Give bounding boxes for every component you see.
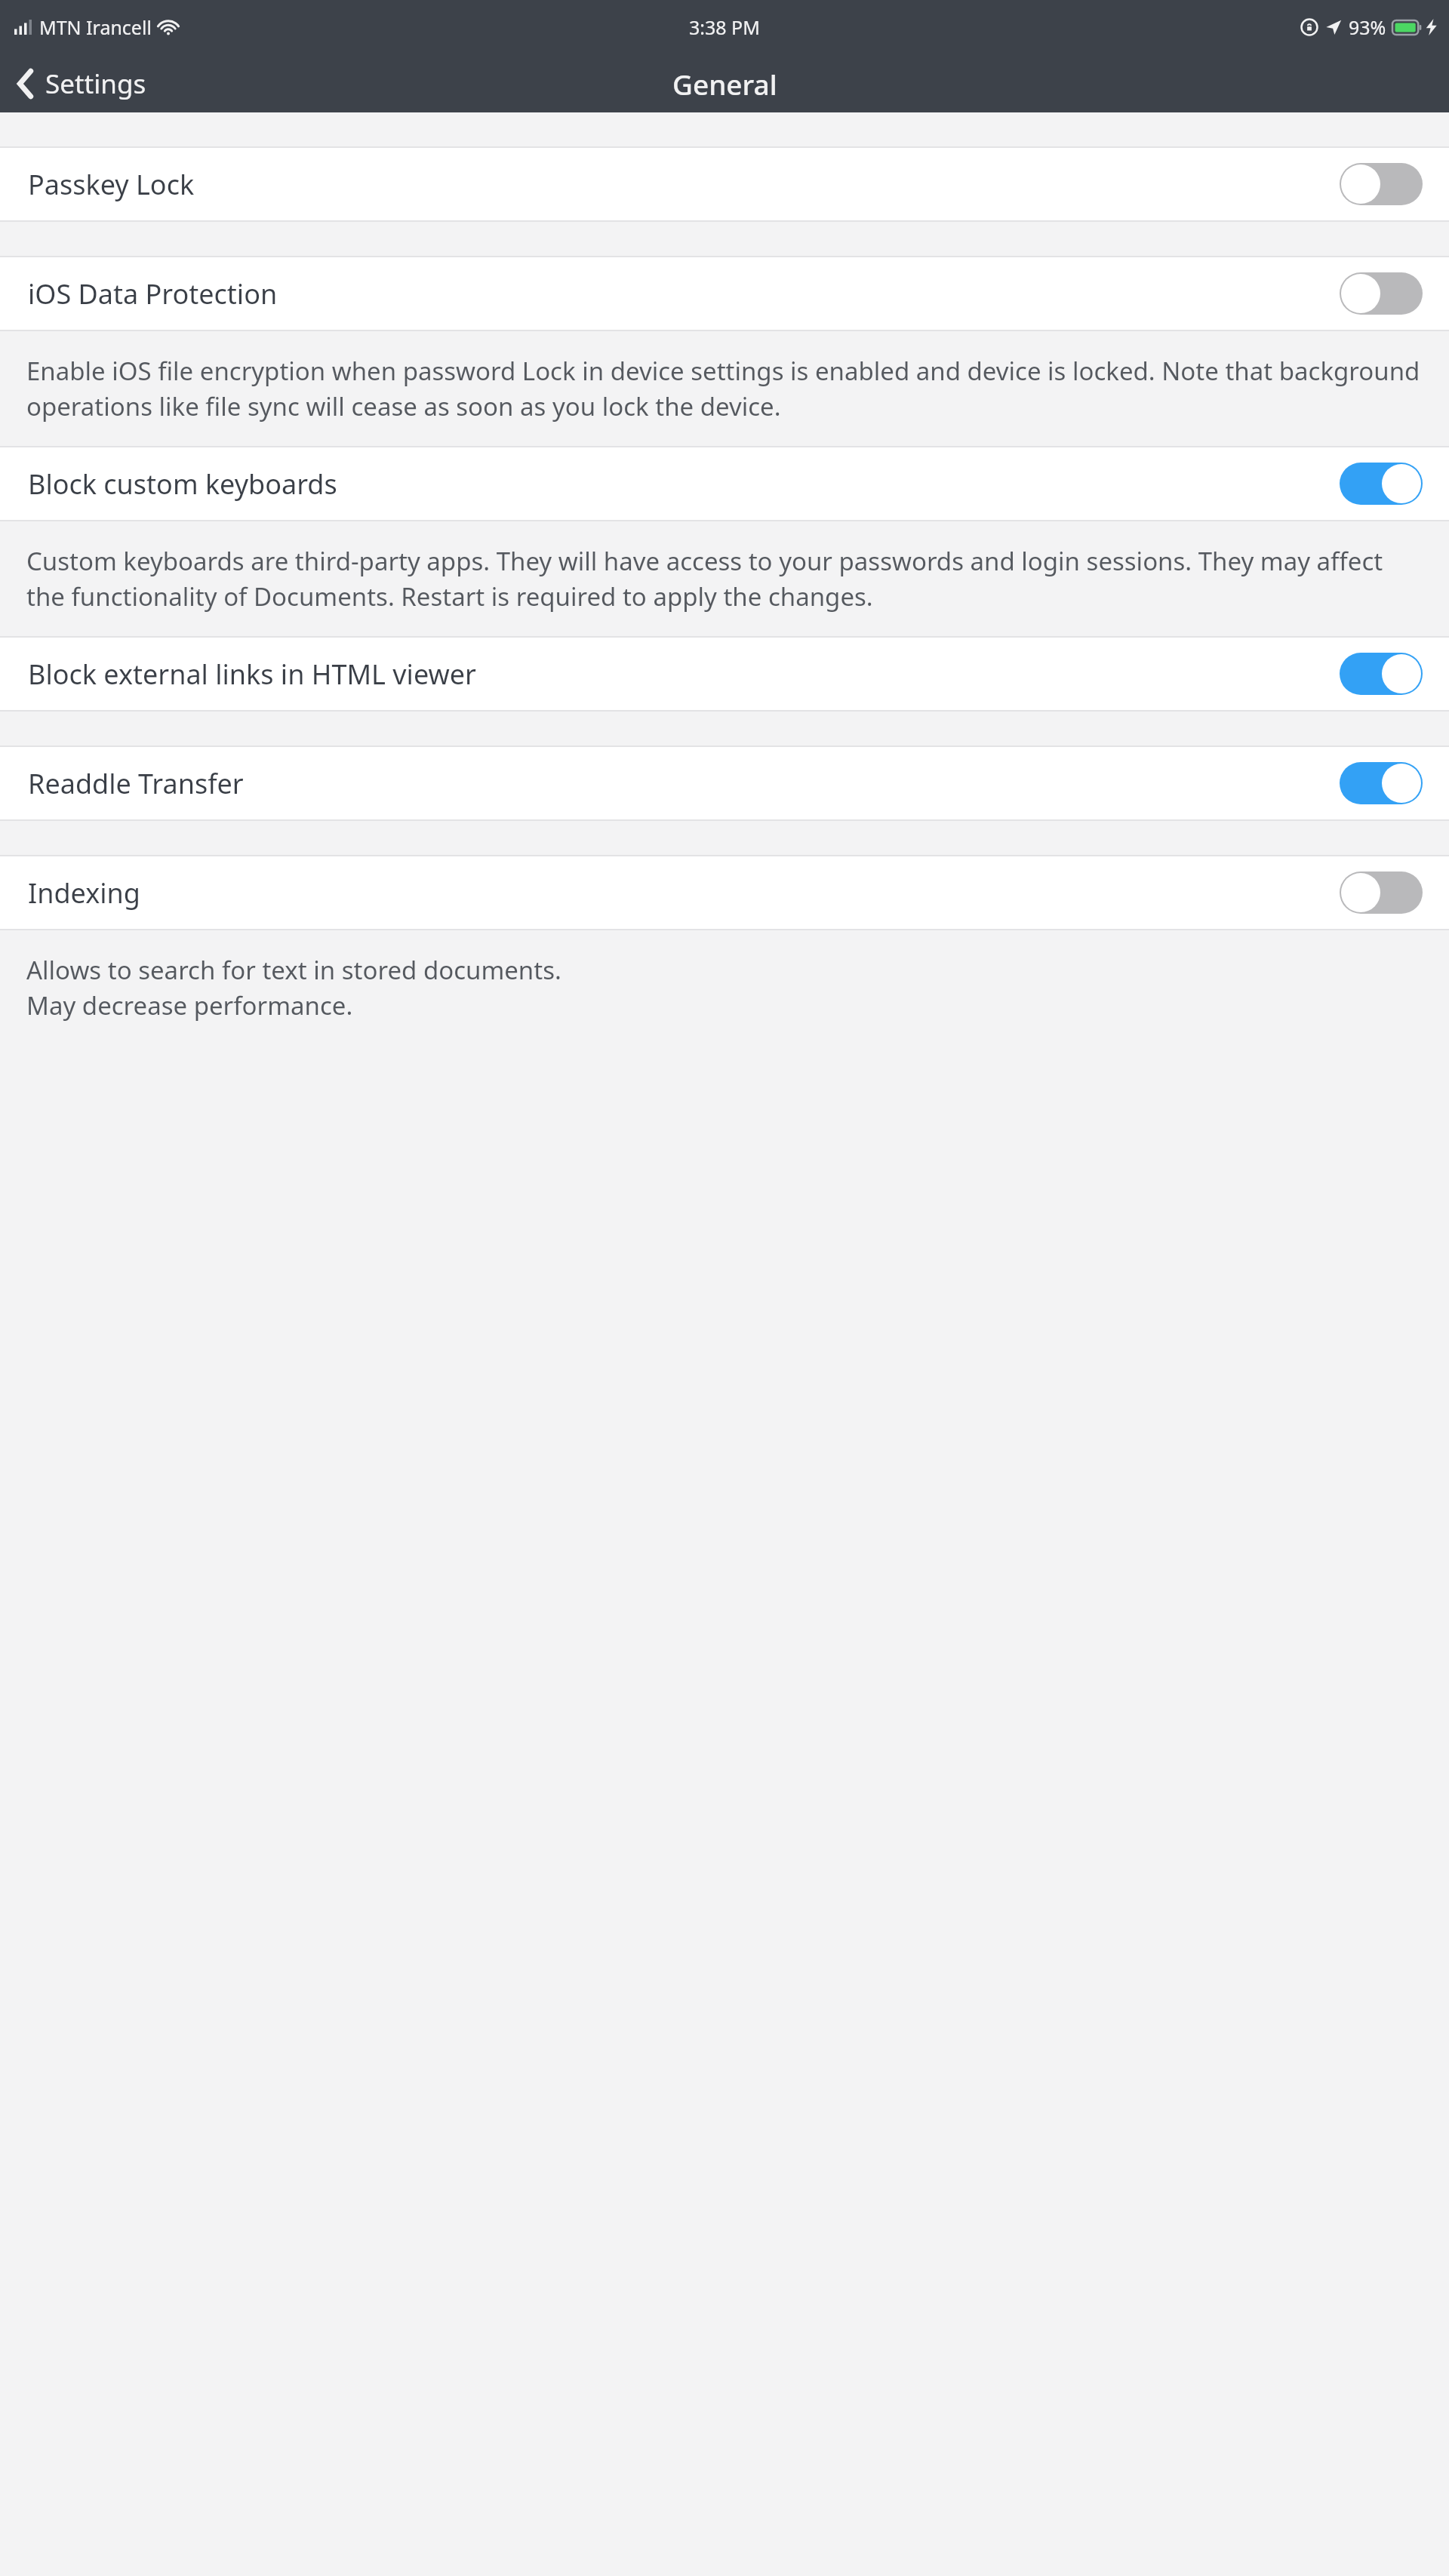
button[interactable]: Block external links in HTML viewer: [0, 638, 1449, 710]
staticText: Indexing: [28, 875, 1340, 911]
button[interactable]: Off: [1340, 163, 1423, 205]
staticText: Allows to search for text in stored docu…: [26, 953, 561, 1022]
staticText: Block custom keyboards: [28, 466, 1340, 503]
staticText: General: [672, 65, 777, 103]
button[interactable]: Block custom keyboards: [0, 447, 1449, 520]
button[interactable]: On: [1340, 762, 1423, 804]
button[interactable]: iOS Data Protection: [0, 257, 1449, 330]
button[interactable]: On: [1340, 653, 1423, 695]
button[interactable]: Settings: [0, 60, 162, 108]
staticText: Readdle Transfer: [28, 765, 1340, 802]
button[interactable]: Readdle Transfer: [0, 747, 1449, 819]
staticText: Passkey Lock: [28, 166, 1340, 203]
staticText: 3:38 PM: [689, 14, 760, 40]
button[interactable]: Indexing: [0, 856, 1449, 929]
button[interactable]: Passkey Lock: [0, 148, 1449, 220]
staticText: MTN Irancell: [39, 14, 152, 40]
staticText: Enable iOS file encryption when password…: [26, 354, 1420, 423]
staticText: 93%: [1349, 14, 1386, 40]
staticText: Block external links in HTML viewer: [28, 656, 1340, 693]
button[interactable]: On: [1340, 463, 1423, 505]
staticText: Settings: [45, 66, 146, 102]
button[interactable]: Off: [1340, 871, 1423, 914]
button[interactable]: Off: [1340, 272, 1423, 315]
staticText: Custom keyboards are third-party apps. T…: [26, 544, 1420, 613]
staticText: iOS Data Protection: [28, 275, 1340, 312]
